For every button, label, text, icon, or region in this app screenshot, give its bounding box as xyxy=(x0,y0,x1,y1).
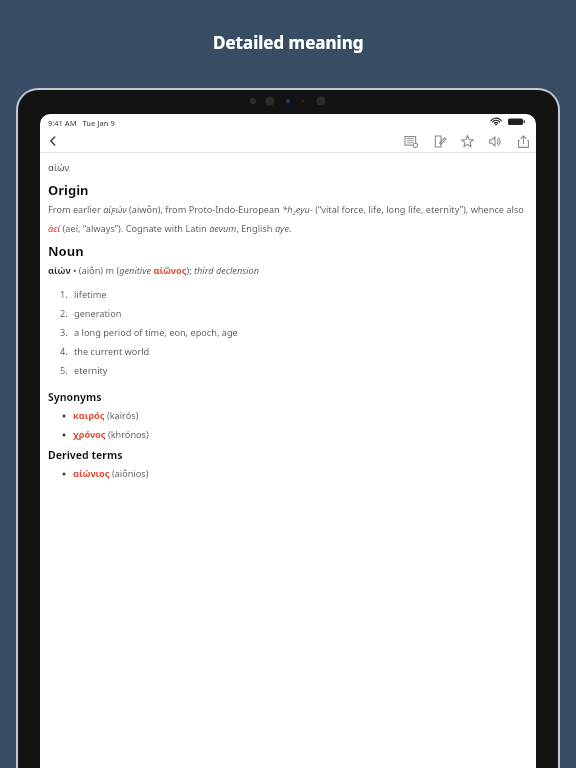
button[interactable]: Back xyxy=(42,130,64,152)
staticText: a long period of time, eon, epoch, age xyxy=(74,326,238,339)
staticText: καιρός (kairós) xyxy=(73,409,139,422)
staticText: αἰώνιος (aiṓnios) xyxy=(73,467,149,480)
staticText: 5. xyxy=(60,364,68,377)
staticText: Noun xyxy=(48,242,84,260)
staticText: generation xyxy=(74,307,122,320)
button[interactable]: χρόνος (khrónos) xyxy=(60,428,528,441)
button[interactable]: Pronounce xyxy=(486,132,504,150)
staticText: Synonyms xyxy=(48,390,102,404)
staticText: 3. xyxy=(60,326,68,339)
button[interactable]: Bookmark xyxy=(458,132,476,150)
button[interactable]: αἰώνιος (aiṓnios) xyxy=(60,467,528,480)
staticText: αἰών xyxy=(48,161,70,174)
staticText: From earlier αἰϝών (aiwṓn), from Proto-I… xyxy=(48,203,528,235)
staticText: lifetime xyxy=(74,288,107,301)
button[interactable]: Share xyxy=(514,132,532,150)
staticText: 2. xyxy=(60,307,68,320)
staticText: χρόνος (khrónos) xyxy=(73,428,149,441)
staticText: the current world xyxy=(74,345,150,358)
button[interactable]: Annotate xyxy=(430,132,448,150)
staticText: Detailed meaning xyxy=(213,31,364,54)
staticText: eternity xyxy=(74,364,108,377)
staticText: 1. xyxy=(60,288,68,301)
button[interactable]: Reader view xyxy=(402,132,420,150)
button[interactable]: καιρός (kairós) xyxy=(60,409,528,422)
staticText: 4. xyxy=(60,345,68,358)
staticText: Origin xyxy=(48,181,89,199)
staticText: 9:41 AM Tue Jan 9 xyxy=(48,118,115,128)
staticText: Derived terms xyxy=(48,448,123,462)
staticText: αἰών • (aiṓn) m (genitive αἰῶνος); third… xyxy=(48,264,260,277)
